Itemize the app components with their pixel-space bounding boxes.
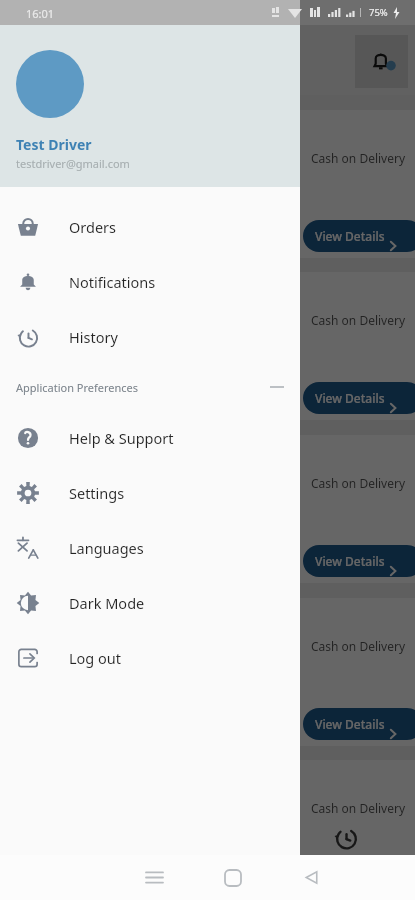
button[interactable]: Profile photo — [16, 50, 84, 118]
staticText: Cash on Delivery — [311, 312, 406, 328]
staticText: View Details — [315, 390, 385, 406]
staticText: Notifications — [69, 272, 156, 292]
staticText: Languages — [69, 538, 144, 558]
button[interactable]: Dark Mode — [0, 575, 300, 630]
button[interactable]: Orders — [0, 199, 300, 254]
staticText: testdriver@gmail.com — [16, 156, 130, 171]
staticText: Cash on Delivery — [311, 475, 406, 491]
staticText: Cash on Delivery — [311, 638, 406, 654]
staticText: View Details — [315, 716, 385, 732]
button[interactable]: Settings — [0, 465, 300, 520]
button[interactable]: Notifications — [0, 254, 300, 309]
button[interactable]: Help & Support — [0, 410, 300, 465]
button[interactable]: History — [320, 812, 372, 864]
staticText: History — [69, 327, 118, 347]
button[interactable]: Notifications — [355, 35, 408, 88]
button[interactable]: Languages — [0, 520, 300, 575]
button[interactable]: View Details — [303, 870, 415, 900]
button[interactable]: View Details — [303, 382, 415, 414]
staticText: View Details — [315, 228, 385, 244]
button[interactable]: View Details — [303, 545, 415, 577]
staticText: 16:01 — [26, 6, 55, 21]
staticText: Application Preferences — [16, 380, 139, 395]
staticText: Cash on Delivery — [311, 150, 406, 166]
staticText: Log out — [69, 648, 122, 668]
staticText: Settings — [69, 483, 125, 503]
staticText: Test Driver — [16, 135, 92, 154]
button[interactable]: Log out — [0, 630, 300, 685]
button[interactable]: Back — [287, 855, 335, 900]
button[interactable]: View Details — [303, 708, 415, 740]
staticText: Help & Support — [69, 428, 174, 448]
button[interactable]: Recent apps — [130, 855, 178, 900]
staticText: 75% — [369, 6, 388, 19]
staticText: Dark Mode — [69, 593, 145, 613]
button[interactable]: Home — [209, 855, 257, 900]
staticText: View Details — [315, 878, 385, 894]
button[interactable]: View Details — [303, 220, 415, 252]
staticText: View Details — [315, 553, 385, 569]
staticText: Orders — [69, 217, 117, 237]
staticText: Cash on Delivery — [311, 800, 406, 816]
button[interactable]: History — [0, 309, 300, 364]
